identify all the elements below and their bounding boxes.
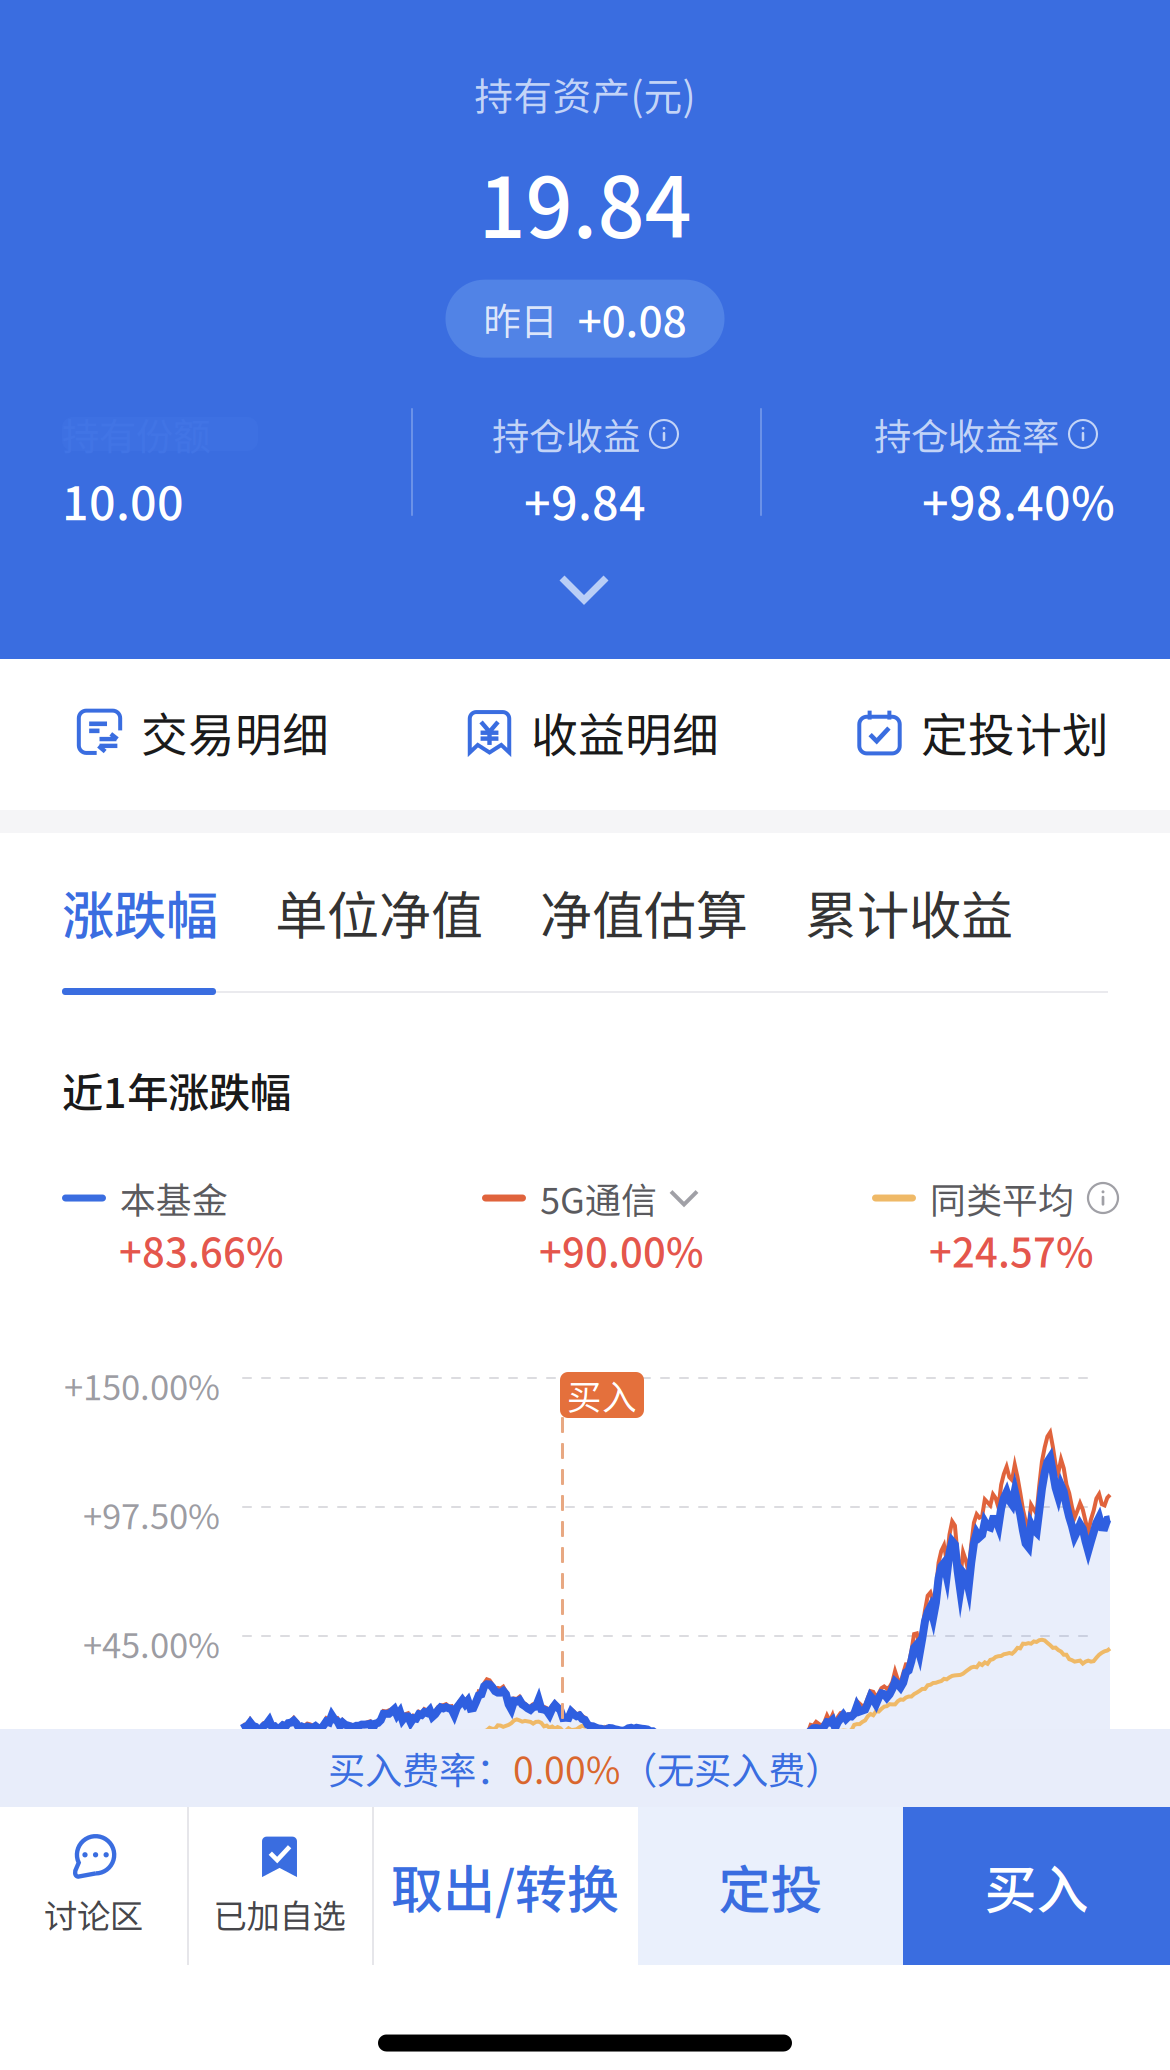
button[interactable]: 昨日 bbox=[445, 280, 724, 358]
staticText: （无买入费） bbox=[620, 1741, 842, 1795]
button[interactable]: 交易明细 bbox=[76, 674, 329, 790]
staticText: 本基金 bbox=[120, 1172, 228, 1224]
button[interactable]: 定投 bbox=[638, 1807, 903, 1965]
staticText: 交易明细 bbox=[141, 698, 329, 766]
staticText: 持有资产(元) bbox=[474, 66, 695, 122]
staticText: 定投计划 bbox=[921, 698, 1109, 766]
staticText: 单位净值 bbox=[275, 874, 483, 950]
staticText: 10.00 bbox=[62, 466, 184, 534]
staticText: 买入费率： bbox=[328, 1741, 513, 1795]
button[interactable]: 展开 bbox=[530, 562, 638, 616]
button[interactable]: 已加自选 bbox=[187, 1807, 372, 1965]
button[interactable]: 定投计划 bbox=[856, 674, 1109, 790]
staticText: 5G通信 bbox=[540, 1172, 657, 1224]
staticText: +90.00% bbox=[539, 1221, 704, 1279]
staticText: 19.84 bbox=[478, 142, 691, 262]
staticText: 近1年涨跌幅 bbox=[62, 1060, 291, 1120]
staticText: 定投 bbox=[718, 1848, 822, 1924]
staticText: 买入 bbox=[984, 1848, 1088, 1924]
button[interactable]: 涨跌幅 bbox=[62, 869, 218, 955]
staticText: 取出/转换 bbox=[391, 1848, 619, 1924]
staticText: 持仓收益率 bbox=[874, 407, 1059, 461]
staticText: +97.50% bbox=[83, 1489, 220, 1539]
button[interactable]: 讨论区 bbox=[0, 1807, 187, 1965]
staticText: 已加自选 bbox=[213, 1890, 345, 1938]
staticText: 0.00% bbox=[513, 1741, 620, 1795]
staticText: +83.66% bbox=[119, 1221, 284, 1279]
staticText: +24.57% bbox=[929, 1221, 1094, 1279]
staticText: 涨跌幅 bbox=[62, 874, 218, 950]
button[interactable]: 单位净值 bbox=[275, 869, 483, 955]
button[interactable]: 累计收益 bbox=[805, 869, 1013, 955]
staticText: 收益明细 bbox=[531, 698, 719, 766]
staticText: +150.00% bbox=[64, 1360, 220, 1410]
staticText: 讨论区 bbox=[44, 1890, 143, 1938]
button[interactable]: 净值估算 bbox=[540, 869, 748, 955]
button[interactable]: 买入 bbox=[903, 1807, 1170, 1965]
staticText: +98.40% bbox=[922, 466, 1115, 534]
staticText: 买入 bbox=[567, 1370, 637, 1420]
staticText: +0.08 bbox=[577, 288, 686, 350]
staticText: 昨日 bbox=[483, 292, 557, 346]
button[interactable]: 取出/转换 bbox=[372, 1807, 638, 1965]
staticText: 累计收益 bbox=[805, 874, 1013, 950]
staticText: +9.84 bbox=[524, 466, 646, 534]
staticText: 净值估算 bbox=[540, 874, 748, 950]
staticText: 同类平均 bbox=[930, 1172, 1074, 1224]
button[interactable]: 收益明细 bbox=[466, 674, 719, 790]
staticText: +45.00% bbox=[83, 1618, 220, 1668]
staticText: 持仓收益 bbox=[492, 407, 640, 461]
